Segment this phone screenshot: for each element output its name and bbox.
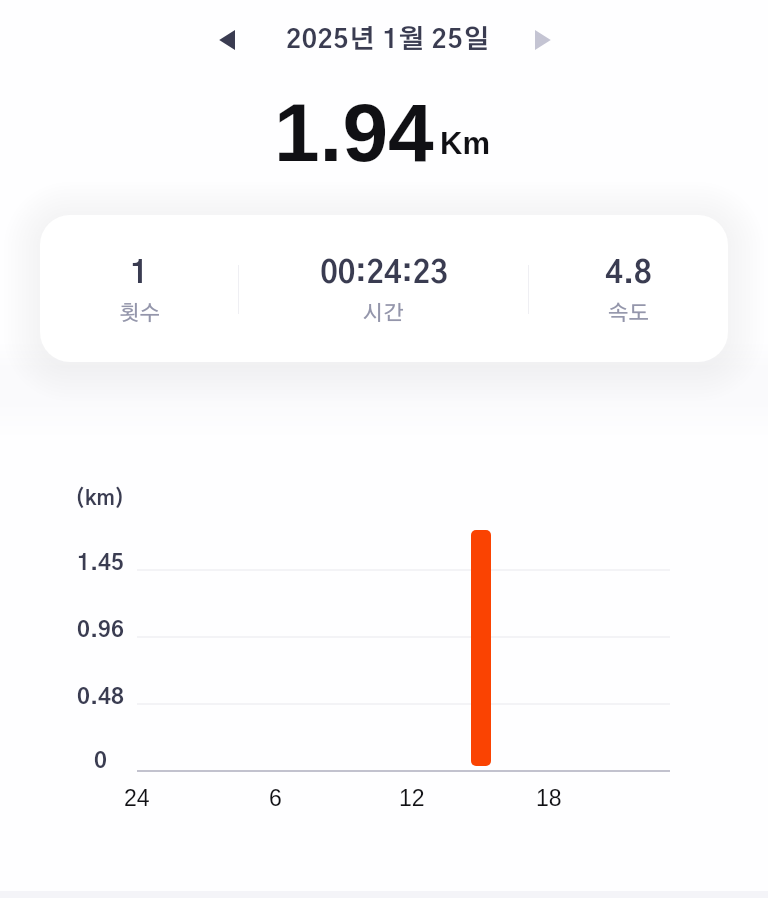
staticText: (km) [75, 488, 125, 509]
staticText: Km [440, 126, 490, 161]
staticText: 2025년 1월 25일 [286, 27, 490, 53]
button[interactable]: 1 [40, 215, 238, 362]
staticText: 1.45 [77, 552, 124, 574]
staticText: 횟수 [119, 303, 160, 324]
staticText: 시간 [363, 303, 404, 324]
staticText: 6 [269, 785, 282, 811]
staticText: 0 [94, 750, 107, 772]
button[interactable]: 4.8 [529, 215, 728, 362]
staticText: 4.8 [605, 259, 652, 289]
staticText: 0.48 [77, 686, 124, 708]
staticText: 1.94 [274, 87, 434, 179]
staticText: 속도 [608, 303, 649, 324]
button[interactable]: Next day [521, 18, 565, 62]
staticText: 18 [536, 785, 562, 811]
staticText: 00:24:23 [320, 259, 448, 289]
staticText: 1 [130, 259, 148, 289]
staticText: 12 [399, 785, 425, 811]
staticText: 0.96 [77, 619, 124, 641]
staticText: 24 [124, 785, 150, 811]
button[interactable]: 00:24:23 [239, 215, 528, 362]
button[interactable]: Previous day [204, 18, 248, 62]
